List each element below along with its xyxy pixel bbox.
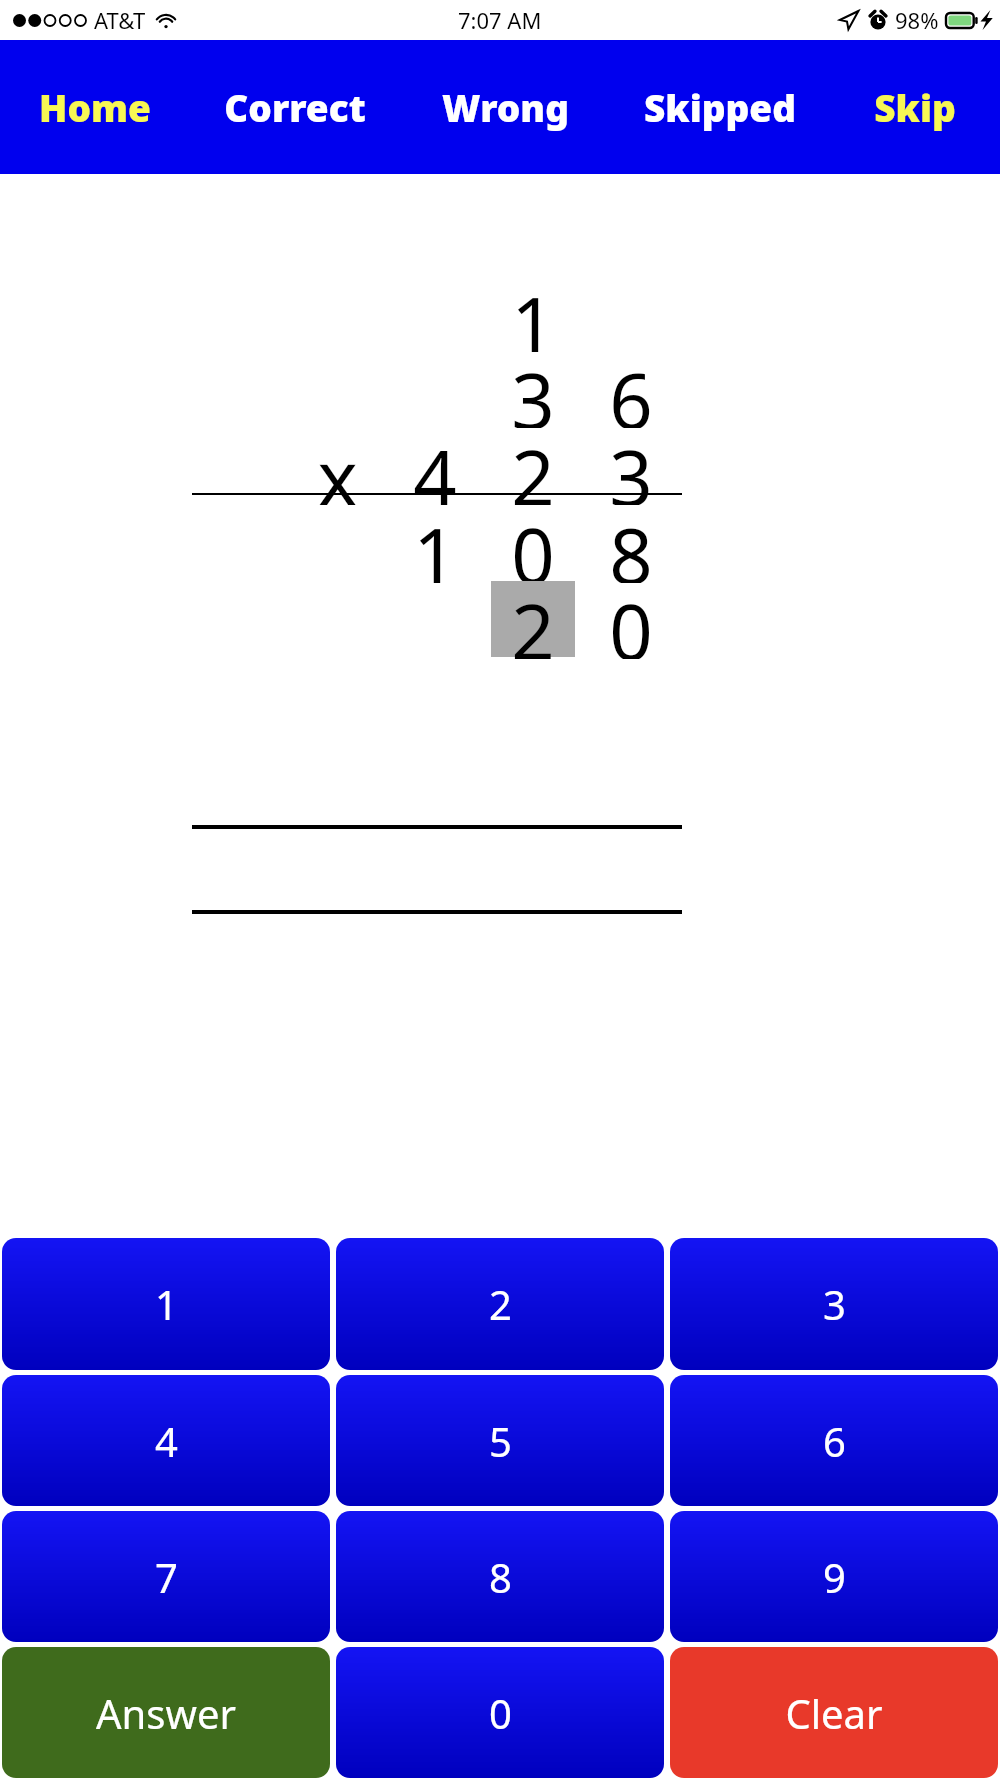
staticText: x [317,425,358,505]
staticText: 3 [823,1277,846,1331]
staticText: 6 [609,348,653,428]
staticText: 8 [609,503,653,583]
staticText: Clear [785,1686,883,1740]
button[interactable] [491,581,575,657]
staticText: 3 [609,425,653,505]
staticText: 9 [823,1550,846,1604]
staticText: 2 [511,579,555,659]
staticText: Home [39,82,151,132]
staticText: 98% [895,5,939,35]
button[interactable]: 5 [336,1375,664,1506]
staticText: 8 [489,1550,512,1604]
staticText: 0 [489,1686,512,1740]
button[interactable]: Skip [830,40,1000,174]
button[interactable]: Correct [190,40,400,174]
button[interactable]: 6 [670,1375,998,1506]
staticText: 2 [489,1277,512,1331]
button[interactable]: Answer [2,1647,330,1778]
button[interactable]: 1 [2,1238,330,1370]
staticText: 0 [609,579,653,659]
staticText: 1 [511,272,555,352]
button[interactable]: 4 [2,1375,330,1506]
staticText: 1 [413,503,457,583]
button[interactable]: Home [0,40,190,174]
staticText: Correct [224,82,366,132]
staticText: 6 [823,1414,846,1468]
button[interactable]: 8 [336,1511,664,1642]
button[interactable]: 3 [670,1238,998,1370]
staticText: 0 [511,503,555,583]
staticText: 4 [155,1414,178,1468]
button[interactable]: 7 [2,1511,330,1642]
staticText: Skipped [644,82,796,132]
staticText: 4 [413,425,457,505]
button[interactable]: 2 [336,1238,664,1370]
staticText: 3 [511,348,555,428]
button[interactable]: Wrong [400,40,610,174]
staticText: Skip [874,82,956,132]
staticText: 2 [511,425,555,505]
staticText: Answer [96,1686,236,1740]
button[interactable]: Skipped [610,40,830,174]
button[interactable]: 0 [336,1647,664,1778]
staticText: AT&T [94,5,146,35]
button[interactable]: 9 [670,1511,998,1642]
staticText: Wrong [442,82,569,132]
staticText: 7:07 AM [458,5,542,35]
staticText: 5 [489,1414,512,1468]
button[interactable]: Clear [670,1647,998,1778]
staticText: 1 [155,1277,178,1331]
staticText: 7 [155,1550,178,1604]
